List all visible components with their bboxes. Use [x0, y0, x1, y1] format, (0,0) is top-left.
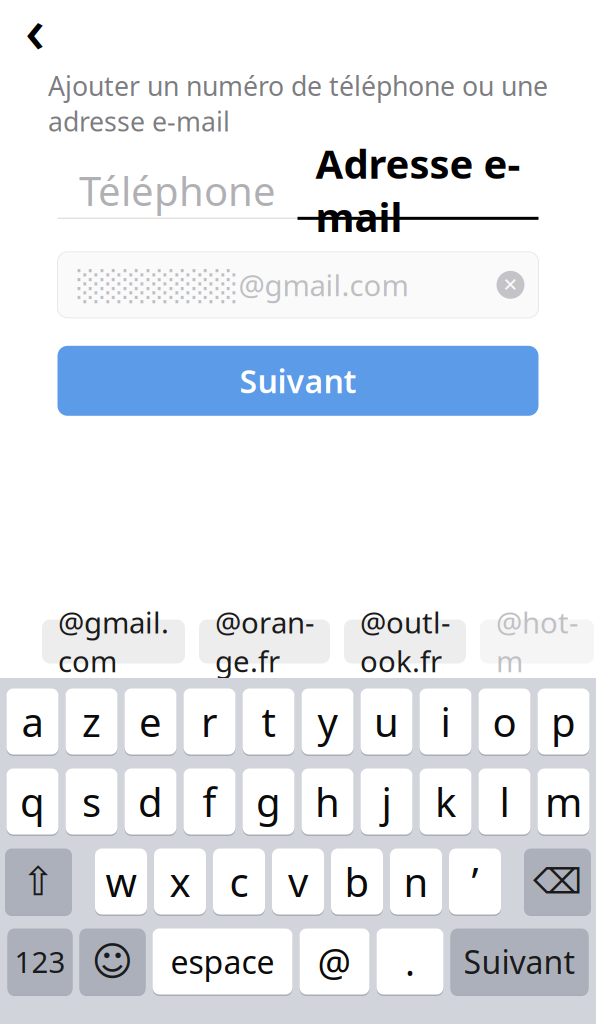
staticText: c [229, 855, 248, 908]
staticText: v [288, 855, 308, 908]
staticText: y [317, 695, 337, 748]
button[interactable]: h [301, 767, 353, 836]
button[interactable]: t [242, 687, 294, 756]
button[interactable]: e [124, 687, 176, 756]
staticText: g [256, 775, 281, 828]
button[interactable]: x [154, 847, 206, 916]
staticText: n [403, 855, 428, 908]
button[interactable]: @hotm [480, 619, 594, 663]
button[interactable]: n [390, 847, 442, 916]
staticText: f [202, 775, 216, 828]
button[interactable]: m [537, 767, 589, 836]
button[interactable]: k [419, 767, 471, 836]
staticText: b [344, 855, 369, 908]
button[interactable]: z [65, 687, 117, 756]
staticText: Ajouter un numéro de téléphone ou une ad… [48, 68, 548, 139]
button[interactable]: Suivant [450, 927, 588, 996]
button[interactable]: y [301, 687, 353, 756]
staticText: m [545, 775, 582, 828]
button[interactable]: f [183, 767, 235, 836]
staticText: @ [317, 937, 351, 986]
staticText: l [499, 775, 509, 828]
staticText: k [435, 775, 456, 828]
button[interactable]: @gmail.com [42, 619, 185, 663]
staticText: ░░░░░░░@gmail.com [77, 265, 408, 304]
staticText: ‹ [25, 0, 45, 70]
staticText: d [138, 775, 163, 828]
staticText: . [405, 937, 415, 986]
button[interactable]: l [478, 767, 530, 836]
button[interactable]: b [331, 847, 383, 916]
button[interactable]: d [124, 767, 176, 836]
staticText: 123 [14, 942, 65, 981]
button[interactable]: a [6, 687, 58, 756]
button[interactable]: Back [8, 2, 62, 56]
staticText: s [82, 775, 101, 828]
staticText: a [21, 695, 43, 748]
staticText: ’ [471, 855, 478, 908]
button[interactable]: Shift [5, 847, 72, 916]
staticText: w [105, 855, 136, 908]
button[interactable]: s [65, 767, 117, 836]
staticText: Téléphone [79, 164, 276, 217]
button[interactable]: @ [299, 927, 369, 996]
button[interactable]: g [242, 767, 294, 836]
staticText: ⌫ [533, 862, 582, 901]
button[interactable]: Téléphone [57, 164, 297, 219]
staticText: Suivant [463, 940, 575, 983]
staticText: u [374, 695, 399, 748]
button[interactable]: Delete [524, 847, 591, 916]
button[interactable]: c [213, 847, 265, 916]
staticText: r [201, 695, 218, 748]
staticText: Adresse e-mail [315, 137, 520, 243]
staticText: z [82, 695, 101, 748]
button[interactable]: w [95, 847, 147, 916]
staticText: @outlook.fr [360, 602, 450, 680]
staticText: i [440, 695, 450, 748]
button[interactable]: i [419, 687, 471, 756]
button[interactable]: espace [152, 927, 292, 996]
staticText: t [261, 695, 275, 748]
staticText: j [381, 775, 391, 828]
staticText: @orange.fr [215, 602, 314, 680]
button[interactable]: v [272, 847, 324, 916]
staticText: ✕ [502, 274, 518, 295]
staticText: p [551, 695, 576, 748]
staticText: espace [170, 940, 274, 983]
staticText: h [315, 775, 340, 828]
staticText: e [139, 695, 162, 748]
staticText: q [20, 775, 45, 828]
staticText: x [169, 855, 190, 908]
button[interactable]: j [360, 767, 412, 836]
button[interactable]: Suivant [57, 346, 538, 416]
staticText: o [492, 695, 516, 748]
button[interactable]: r [183, 687, 235, 756]
button[interactable]: o [478, 687, 530, 756]
button[interactable]: ’ [449, 847, 501, 916]
button[interactable]: @orange.fr [199, 619, 330, 663]
button[interactable]: p [537, 687, 589, 756]
button[interactable]: Emoji [79, 927, 145, 996]
staticText: Suivant [239, 360, 356, 402]
button[interactable]: Clear text [488, 263, 532, 307]
button[interactable]: Adresse e-mail [297, 163, 538, 220]
staticText: ☺ [91, 939, 133, 984]
staticText: ⇧ [21, 859, 55, 904]
staticText: @hotm [496, 602, 578, 680]
button[interactable]: q [6, 767, 58, 836]
staticText: @gmail.com [58, 602, 169, 680]
button[interactable]: . [376, 927, 443, 996]
button[interactable]: u [360, 687, 412, 756]
button[interactable]: 123 [7, 927, 72, 996]
button[interactable]: @outlook.fr [344, 619, 466, 663]
